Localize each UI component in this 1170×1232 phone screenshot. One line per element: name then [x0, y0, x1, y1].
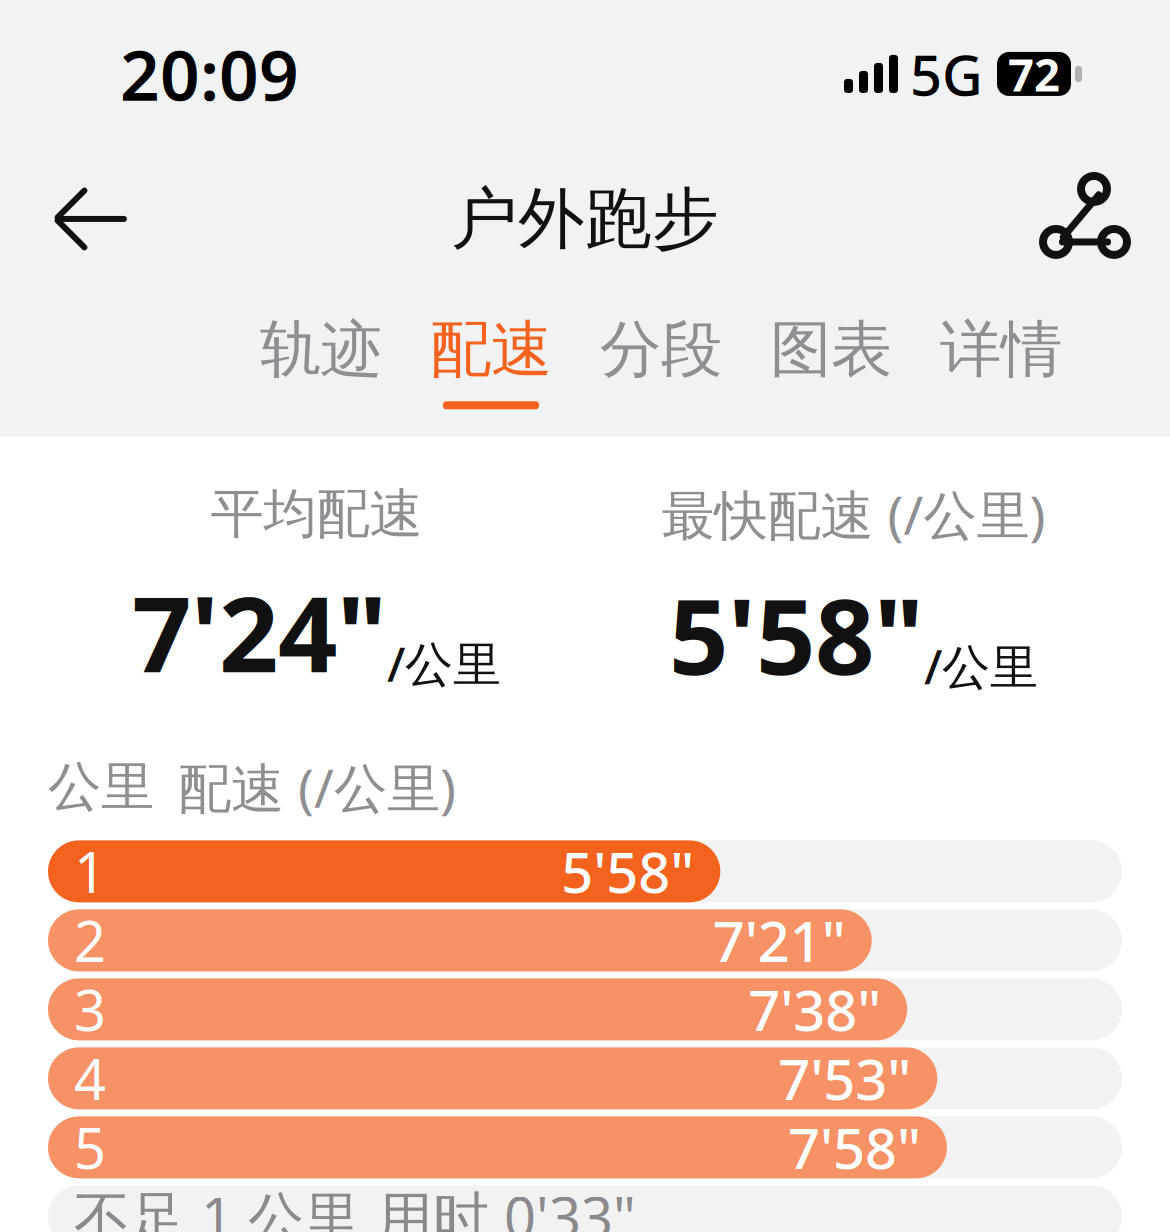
staticText: 20:09 — [120, 28, 299, 120]
staticText: 7'24" — [132, 563, 387, 701]
staticText: 5'58" — [561, 834, 694, 909]
staticText: 配速 (/公里) — [178, 752, 456, 822]
staticText: /公里 — [387, 631, 501, 695]
staticText: 最快配速 (/公里) — [661, 479, 1045, 549]
button[interactable]: 返回 — [32, 159, 152, 279]
button[interactable]: 轨迹 — [236, 304, 406, 417]
button[interactable]: 分享 — [1018, 159, 1138, 279]
staticText: 4 — [74, 1041, 106, 1116]
button[interactable]: 配速 — [406, 304, 576, 417]
staticText: 平均配速 — [210, 481, 422, 547]
staticText: 5'58" — [669, 565, 924, 703]
button[interactable]: 分段 — [576, 304, 746, 417]
staticText: /公里 — [924, 634, 1038, 697]
staticText: 轨迹 — [260, 312, 382, 387]
staticText: 公里 — [48, 754, 154, 820]
staticText: 2 — [74, 903, 106, 978]
staticText: 7'58" — [788, 1110, 921, 1185]
staticText: 5G — [910, 37, 983, 111]
staticText: 配速 — [430, 312, 552, 387]
staticText: 详情 — [940, 312, 1062, 387]
staticText: 5 — [74, 1110, 106, 1185]
staticText: 图表 — [770, 312, 892, 387]
staticText: 7'53" — [778, 1041, 911, 1116]
staticText: 1 — [74, 834, 106, 909]
staticText: 7'38" — [748, 972, 881, 1047]
button[interactable]: 详情 — [916, 304, 1086, 417]
staticText: 分段 — [600, 312, 722, 387]
staticText: 72 — [1008, 44, 1060, 104]
staticText: 3 — [74, 972, 106, 1047]
staticText: 不足 1 公里 用时 0'33" — [74, 1179, 636, 1232]
staticText: 户外跑步 — [451, 178, 719, 260]
button[interactable]: 图表 — [746, 304, 916, 417]
staticText: 7'21" — [713, 903, 846, 978]
